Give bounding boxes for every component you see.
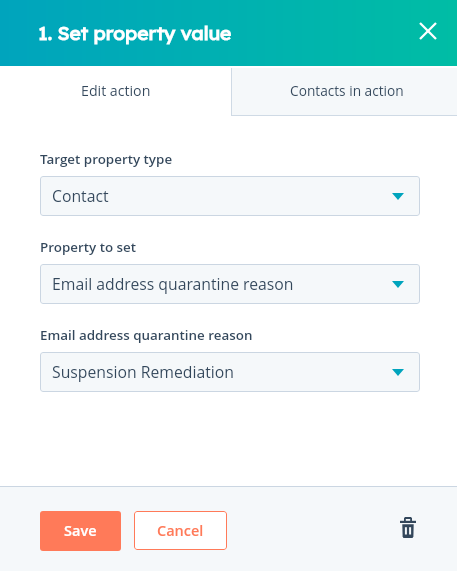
- button[interactable]: Save: [40, 511, 121, 551]
- staticText: Edit action: [81, 81, 151, 100]
- button[interactable]: Email address quarantine reason: [40, 264, 420, 304]
- button[interactable]: Contacts in action: [231, 68, 457, 118]
- staticText: Property to set: [40, 238, 137, 256]
- staticText: Target property type: [40, 150, 173, 168]
- staticText: Email address quarantine reason: [52, 273, 294, 294]
- staticText: Suspension Remediation: [52, 361, 234, 382]
- staticText: Contact: [52, 185, 109, 206]
- button[interactable]: Suspension Remediation: [40, 352, 420, 392]
- button[interactable]: Edit action: [0, 66, 231, 115]
- button[interactable]: Delete: [392, 512, 424, 544]
- button[interactable]: Close: [410, 13, 446, 49]
- staticText: Save: [64, 521, 97, 541]
- button[interactable]: Contact: [40, 176, 420, 216]
- staticText: Email address quarantine reason: [40, 326, 253, 344]
- button[interactable]: Cancel: [134, 511, 227, 550]
- staticText: Cancel: [157, 521, 204, 541]
- staticText: 1. Set property value: [38, 21, 232, 45]
- staticText: Contacts in action: [290, 81, 404, 100]
